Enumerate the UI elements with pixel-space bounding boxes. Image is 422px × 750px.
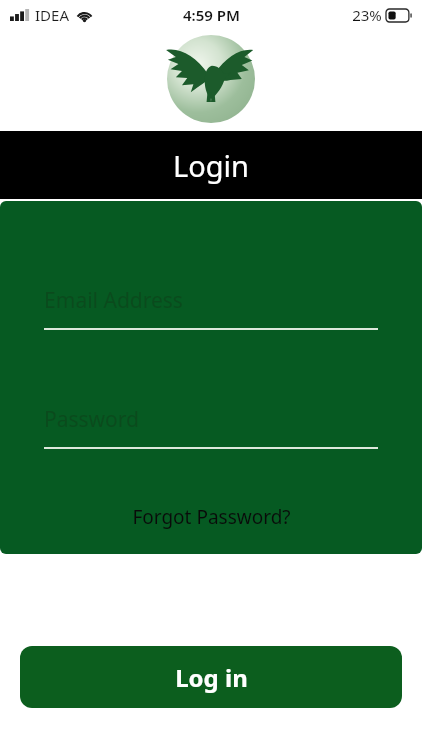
button[interactable]: Email Address [44, 286, 378, 330]
staticText: IDEA [35, 5, 69, 25]
button[interactable]: Password [44, 405, 378, 449]
staticText: 23% [352, 5, 382, 25]
staticText: Log in [175, 661, 248, 694]
staticText: Email Address [44, 286, 183, 315]
staticText: Forgot Password? [132, 504, 291, 530]
staticText: 4:59 PM [183, 5, 240, 25]
button[interactable]: Log in [20, 646, 402, 708]
staticText: Login [173, 146, 249, 185]
button[interactable]: Forgot Password? [122, 500, 301, 534]
staticText: Password [44, 405, 139, 434]
